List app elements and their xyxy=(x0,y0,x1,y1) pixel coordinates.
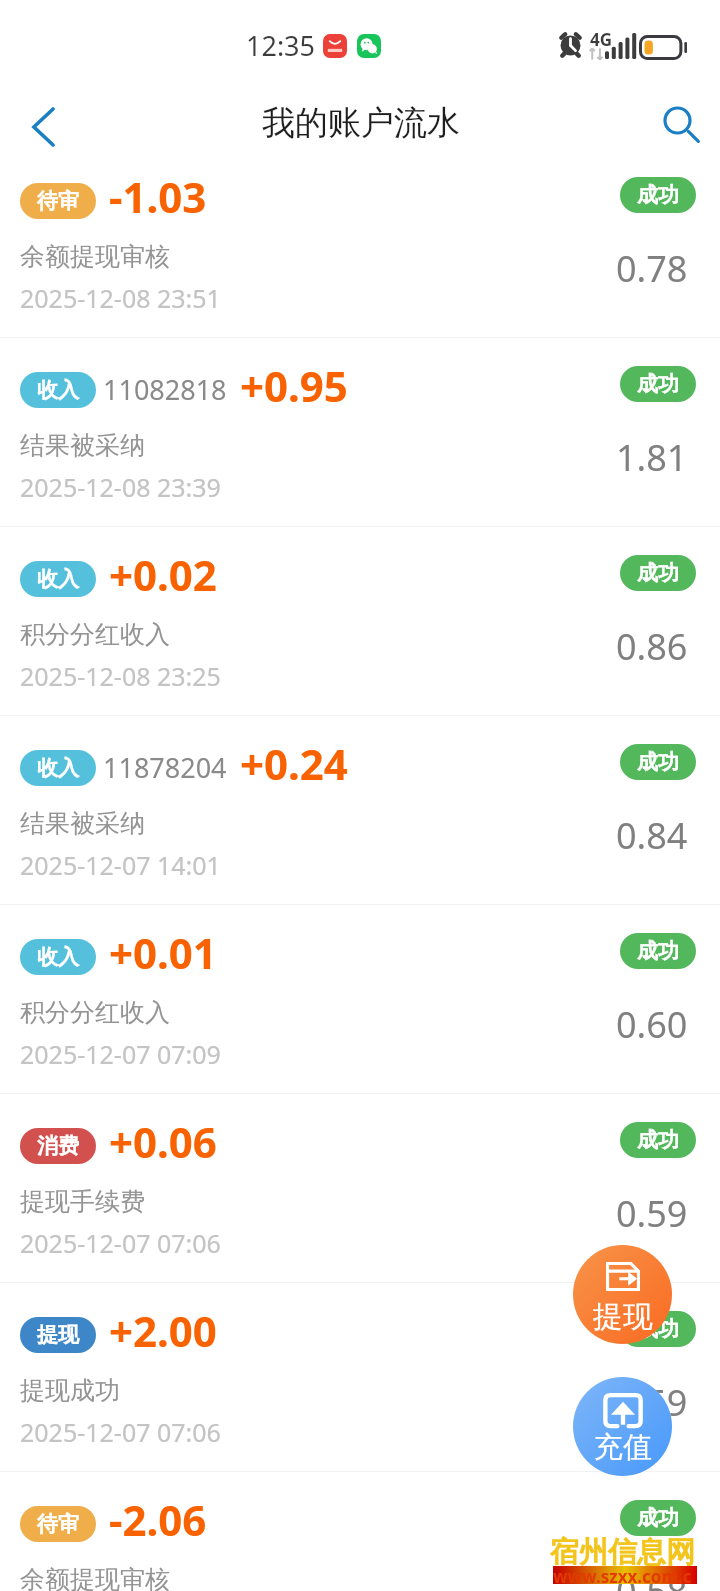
staticText: 0.60 xyxy=(616,1000,688,1049)
staticText: 成功 xyxy=(637,749,679,775)
button[interactable]: Back xyxy=(12,96,74,158)
staticText: 11082818 xyxy=(103,371,227,408)
staticText: +0.24 xyxy=(240,735,348,792)
staticText: -2.06 xyxy=(109,1491,207,1548)
staticText: 余额提现审核 xyxy=(20,1564,170,1591)
button[interactable]: 待审 xyxy=(0,1471,720,1591)
staticText: 收入 xyxy=(37,377,79,403)
staticText: 收入 xyxy=(37,755,79,781)
button[interactable]: 收入 xyxy=(0,904,720,1093)
staticText: 0.59 xyxy=(616,1189,688,1238)
button[interactable]: 收入 xyxy=(0,526,720,715)
staticText: 积分分红收入 xyxy=(20,997,170,1028)
staticText: +0.95 xyxy=(240,357,348,414)
staticText: 2025-12-08 23:25 xyxy=(20,659,221,693)
staticText: 0.86 xyxy=(616,622,688,671)
staticText: 成功 xyxy=(637,938,679,964)
staticText: 宿州信息网 xyxy=(550,1534,695,1571)
staticText: 成功 xyxy=(637,1127,679,1153)
staticText: 收入 xyxy=(37,944,79,970)
staticText: 0.84 xyxy=(616,811,688,860)
staticText: 0.59 xyxy=(616,1378,688,1427)
staticText: 收入 xyxy=(37,566,79,592)
staticText: 2025-12-07 14:01 xyxy=(20,848,221,882)
button[interactable]: 待审 xyxy=(0,148,720,337)
staticText: 成功 xyxy=(637,182,679,208)
staticText: 消费 xyxy=(37,1133,79,1159)
staticText: 成功 xyxy=(637,371,679,397)
staticText: 2025-12-07 07:06 xyxy=(20,1226,221,1260)
staticText: 2025-12-07 07:06 xyxy=(20,1415,221,1449)
staticText: 积分分红收入 xyxy=(20,619,170,650)
staticText: 成功 xyxy=(637,1316,679,1342)
staticText: 12:35 xyxy=(246,27,316,64)
staticText: 我的账户流水 xyxy=(262,102,460,144)
staticText: 0.58 xyxy=(616,1567,688,1591)
staticText: +0.06 xyxy=(109,1113,217,1170)
staticText: 充值 xyxy=(594,1429,652,1466)
button[interactable]: 提现 xyxy=(573,1245,672,1344)
staticText: 提现 xyxy=(37,1322,79,1348)
staticText: -1.03 xyxy=(109,168,207,225)
button[interactable]: 充值 xyxy=(573,1377,672,1476)
staticText: 提现手续费 xyxy=(20,1186,145,1217)
staticText: 0.78 xyxy=(616,244,688,293)
staticText: +0.02 xyxy=(109,546,217,603)
staticText: +0.01 xyxy=(109,924,217,981)
staticText: 2025-12-08 23:51 xyxy=(20,281,221,315)
staticText: 提现成功 xyxy=(20,1375,120,1406)
staticText: +2.00 xyxy=(109,1302,217,1359)
staticText: 余额提现审核 xyxy=(20,241,170,272)
staticText: 提现 xyxy=(593,1298,653,1336)
staticText: 结果被采纳 xyxy=(20,430,145,461)
staticText: 成功 xyxy=(637,560,679,586)
button[interactable]: 收入 xyxy=(0,715,720,904)
staticText: 结果被采纳 xyxy=(20,808,145,839)
staticText: 1.81 xyxy=(616,433,688,482)
staticText: 4G xyxy=(590,28,613,51)
staticText: 2025-12-07 07:09 xyxy=(20,1037,221,1071)
staticText: 成功 xyxy=(637,1505,679,1531)
staticText: 11878204 xyxy=(103,749,227,786)
button[interactable]: Search xyxy=(653,96,711,154)
button[interactable]: 提现 xyxy=(0,1282,720,1471)
button[interactable]: 收入 xyxy=(0,337,720,526)
staticText: 待审 xyxy=(37,1511,79,1537)
staticText: www.szxx.com.cn xyxy=(553,1565,697,1585)
staticText: 2025-12-08 23:39 xyxy=(20,470,221,504)
staticText: 待审 xyxy=(37,188,79,214)
button[interactable]: 消费 xyxy=(0,1093,720,1282)
